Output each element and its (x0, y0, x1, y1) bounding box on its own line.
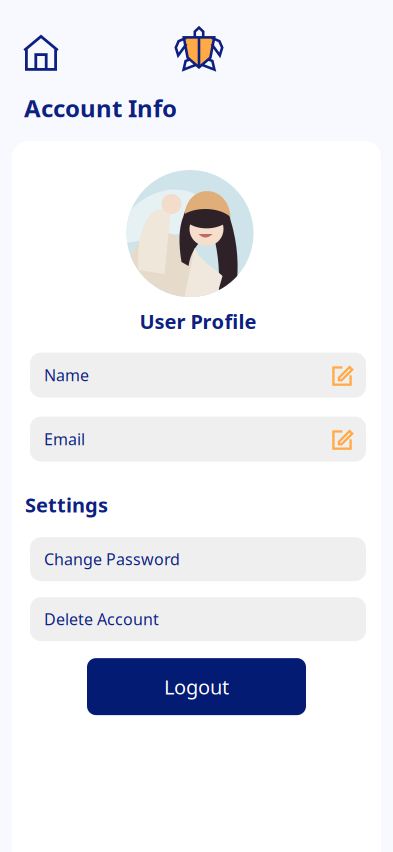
staticText: User Profile (139, 308, 256, 335)
button[interactable]: Logout (87, 658, 306, 715)
button[interactable]: Home (23, 35, 59, 71)
staticText: Email (44, 428, 85, 450)
button[interactable]: Email (30, 417, 366, 462)
staticText: Delete Account (44, 608, 159, 630)
staticText: Name (44, 364, 89, 386)
button[interactable]: Change Password (30, 537, 366, 581)
staticText: Logout (164, 673, 229, 700)
staticText: Change Password (44, 548, 180, 570)
staticText: Settings (25, 492, 108, 518)
button[interactable]: Name (30, 353, 366, 398)
staticText: Account Info (24, 92, 177, 124)
button[interactable]: Delete Account (30, 597, 366, 641)
